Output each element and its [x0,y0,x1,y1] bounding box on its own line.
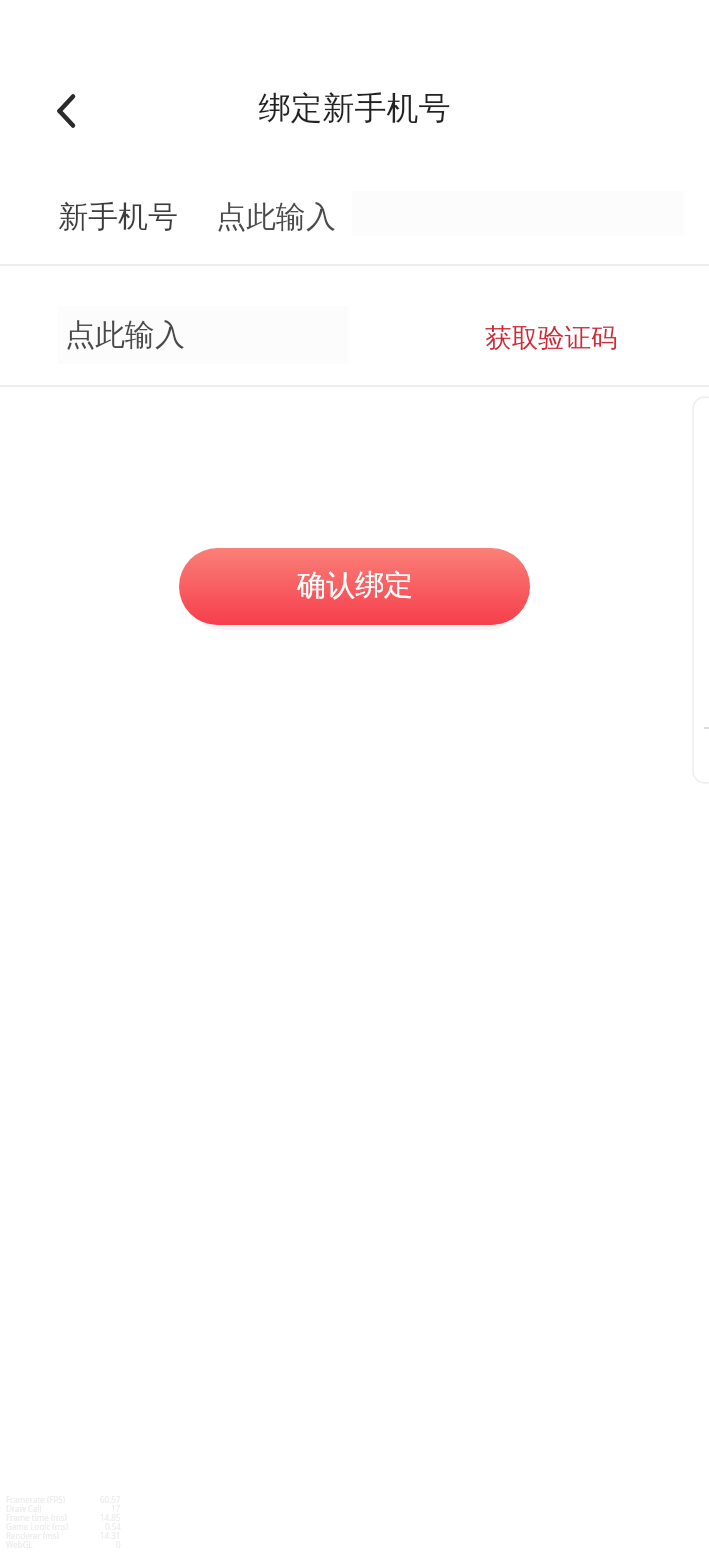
staticText: Frame time (ms) [6,1512,67,1521]
staticText: WebGL [6,1539,33,1548]
button[interactable]: 新手机号 [0,166,709,267]
staticText: 17 [111,1503,121,1512]
button[interactable]: 点此输入 [58,306,349,364]
staticText: Framerate (FPS) [6,1494,66,1503]
button[interactable]: 获取验证码 [478,306,624,364]
staticText: 0 [116,1539,121,1548]
staticText: Game Logic (ms) [6,1521,69,1530]
staticText: 绑定新手机号 [0,88,709,128]
staticText: 确认绑定 [297,567,413,604]
staticText: 60.57 [100,1494,121,1503]
button[interactable]: 确认绑定 [179,548,530,625]
staticText: 获取验证码 [485,321,618,354]
staticText: 0.54 [105,1521,121,1530]
staticText: 14.31 [100,1530,121,1539]
staticText: 新手机号 [58,198,178,236]
staticText: 点此输入 [65,316,185,354]
button[interactable]: Back [44,82,102,140]
staticText: Renderer (ms) [6,1530,60,1539]
staticText: 14.85 [100,1512,121,1521]
staticText: Draw Call [6,1503,42,1512]
staticText: 点此输入 [216,198,336,236]
